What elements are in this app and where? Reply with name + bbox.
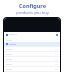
- button[interactable]: [4, 52, 60, 56]
- button[interactable]: [4, 62, 60, 66]
- staticText: Configure: [19, 2, 46, 9]
- button[interactable]: [4, 57, 60, 61]
- button[interactable]: [4, 32, 60, 37]
- button[interactable]: [4, 38, 60, 42]
- staticText: products you buy: [16, 10, 49, 15]
- button[interactable]: [4, 67, 60, 71]
- button[interactable]: [4, 47, 60, 51]
- button[interactable]: [4, 42, 60, 46]
